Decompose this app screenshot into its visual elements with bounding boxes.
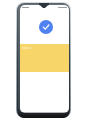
button[interactable]: Done [39,20,53,34]
button[interactable] [20,44,69,72]
